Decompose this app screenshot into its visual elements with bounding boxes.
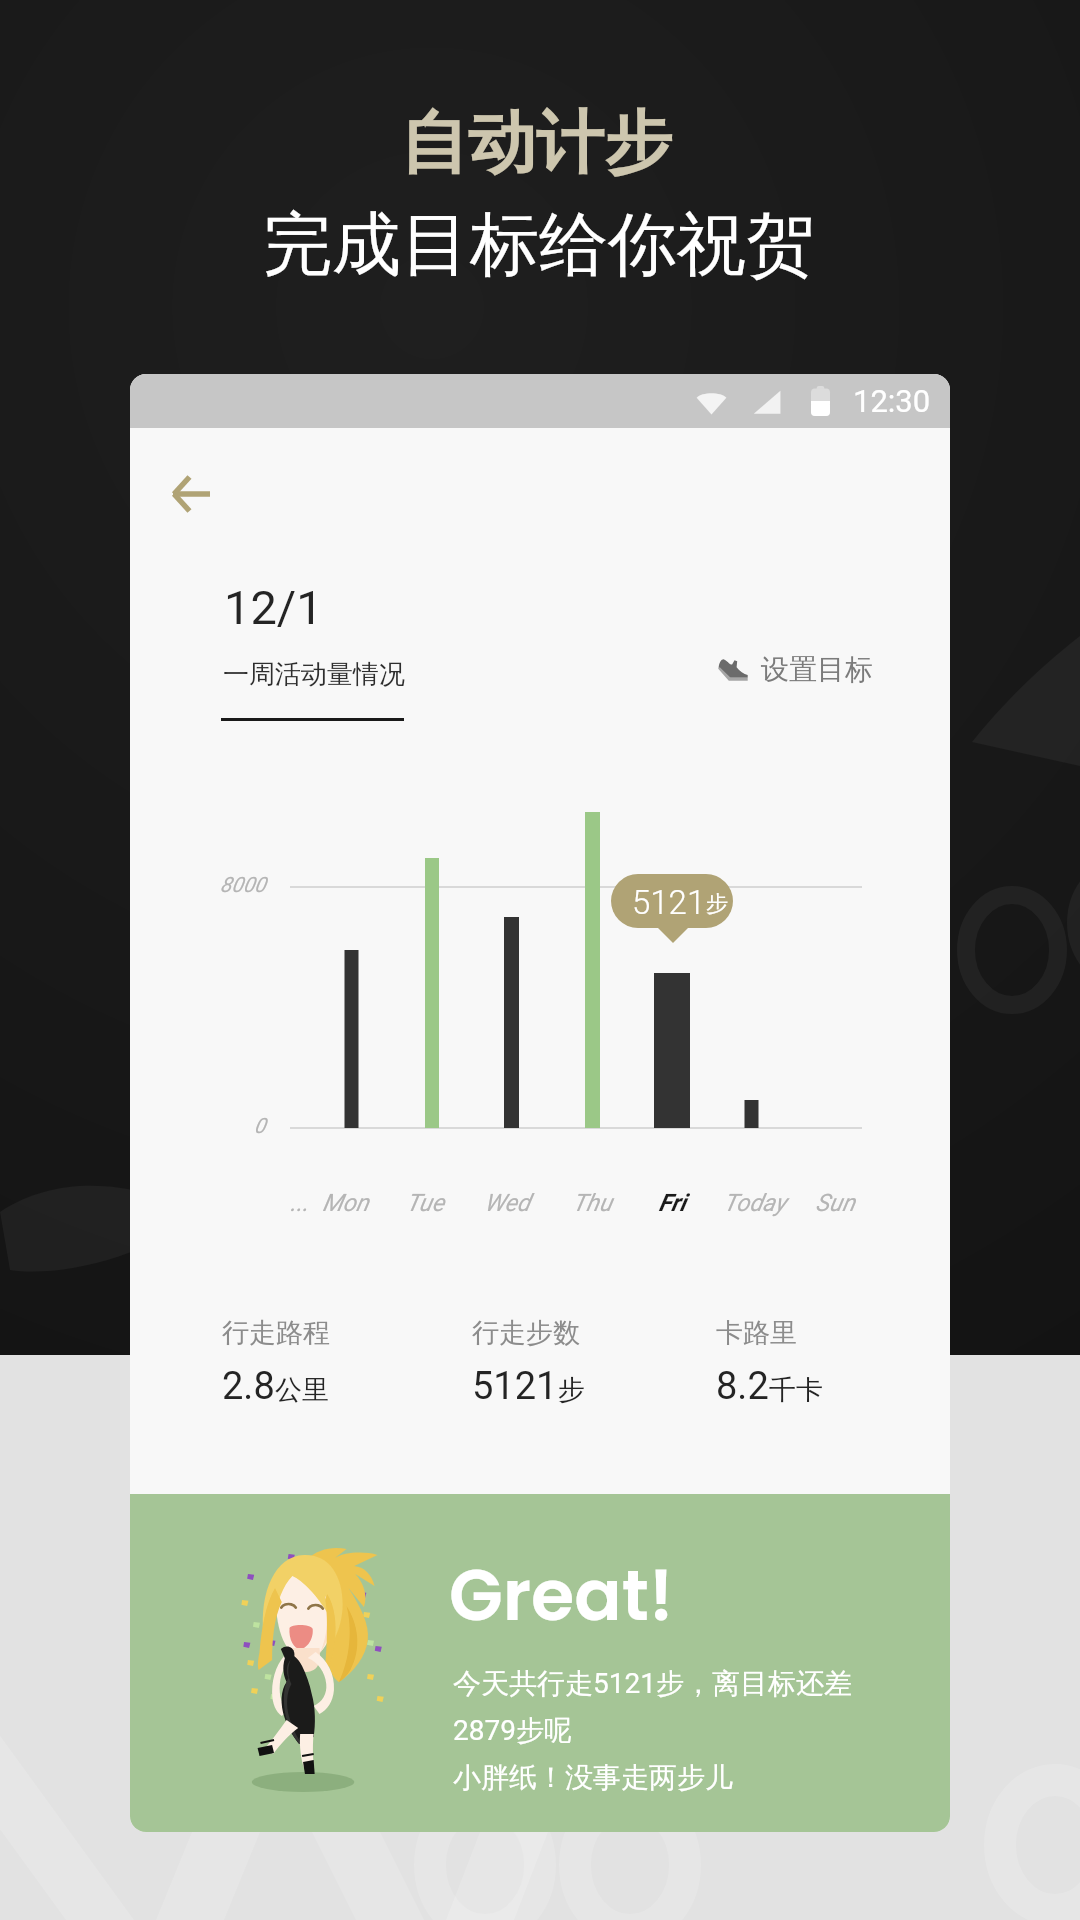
staticText: 千卡 [769, 1373, 823, 1407]
button[interactable]: Great! [130, 1494, 950, 1832]
staticText: 行走步数 [472, 1316, 580, 1350]
staticText: Great! [449, 1546, 674, 1644]
staticText: 5121 [472, 1364, 558, 1409]
staticText: 8.2 [716, 1364, 769, 1409]
button[interactable]: 设置目标 [706, 638, 885, 701]
staticText: 卡路里 [716, 1316, 797, 1350]
staticText: 完成目标给你祝贺 [263, 202, 815, 289]
staticText: Thu [572, 1189, 612, 1217]
staticText: 自动计步 [400, 101, 672, 187]
staticText: Wed [484, 1189, 530, 1217]
staticText: Mon [322, 1189, 369, 1217]
staticText: 公里 [275, 1373, 329, 1407]
staticText: 步 [706, 890, 728, 918]
staticText: 今天共行走5121步，离目标还差 [453, 1666, 852, 1701]
button[interactable]: Back [152, 455, 230, 533]
staticText: 行走路程 [222, 1316, 330, 1350]
staticText: 8000 [220, 873, 266, 898]
staticText: 一周活动量情况 [223, 658, 405, 691]
staticText: 5121 [632, 883, 706, 922]
staticText: 设置目标 [761, 652, 873, 687]
button[interactable]: 行走路程 [208, 1304, 344, 1421]
staticText: Today [723, 1189, 786, 1217]
staticText: Fri [658, 1189, 686, 1217]
staticText: Sun [815, 1189, 855, 1217]
staticText: 步 [558, 1373, 585, 1407]
staticText: ... [290, 1189, 309, 1217]
staticText: 12:30 [853, 383, 931, 419]
staticText: 12/1 [224, 580, 323, 635]
staticText: 2.8 [222, 1364, 275, 1409]
staticText: 0 [254, 1114, 266, 1139]
staticText: Tue [406, 1189, 444, 1217]
button[interactable]: 行走步数 [458, 1304, 599, 1421]
staticText: 小胖纸！没事走两步儿 [453, 1760, 733, 1795]
staticText: 2879步呢 [453, 1713, 572, 1748]
button[interactable]: 卡路里 [702, 1304, 837, 1421]
